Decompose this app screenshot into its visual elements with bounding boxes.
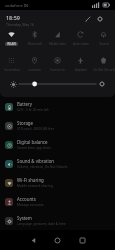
button[interactable]: Auto rotate <box>69 31 92 49</box>
staticText: Screenshot <box>4 68 20 72</box>
staticText: Do Not Disturb <box>93 68 115 72</box>
button[interactable]: Sound & vibration <box>0 154 115 173</box>
staticText: Thursday, May 16 <box>6 22 34 27</box>
button[interactable]: Wi-Fi sharing <box>0 173 115 192</box>
button[interactable]: Do Not Disturb <box>92 57 115 75</box>
staticText: Battery <box>17 101 33 107</box>
button[interactable]: Edit <box>82 13 94 25</box>
button[interactable]: Sound <box>92 31 115 49</box>
staticText: WLAN <box>7 42 16 46</box>
staticText: Digital balance <box>17 139 48 145</box>
button[interactable]: Mobile data <box>46 31 69 49</box>
button[interactable]: Battery <box>0 97 115 116</box>
staticText: Accounts <box>17 196 36 202</box>
button[interactable]: Airplane <box>69 57 92 75</box>
staticText: Wi-Fi sharing <box>17 177 44 183</box>
button[interactable]: System <box>0 211 115 230</box>
staticText: vodafone IN <box>5 3 29 8</box>
staticText: Volume, vibration, Do Not Disturb <box>17 165 68 169</box>
staticText: 31% used - 88.00 GB free <box>17 127 55 131</box>
staticText: Manage accounts <box>17 203 44 207</box>
staticText: Language, gestures, date & time <box>17 222 66 226</box>
button[interactable]: Screen rec. <box>46 57 69 75</box>
staticText: Auto rotate <box>73 42 89 46</box>
button[interactable]: Location <box>23 57 46 75</box>
staticText: Screen time, app limits <box>17 146 52 150</box>
button[interactable]: Auto brightness <box>6 77 20 91</box>
button[interactable]: Accounts <box>0 192 115 211</box>
button[interactable]: Display settings <box>95 77 109 91</box>
button[interactable]: Digital balance <box>0 135 115 154</box>
staticText: Storage <box>17 120 34 126</box>
staticText: Airplane <box>75 68 87 72</box>
button[interactable]: Storage <box>0 116 115 135</box>
staticText: Mobile data <box>49 42 66 46</box>
staticText: Location <box>28 68 41 72</box>
button[interactable]: Recents <box>72 230 92 250</box>
button[interactable]: WLAN <box>0 31 23 49</box>
button[interactable]: Bluetooth <box>23 31 46 49</box>
button[interactable]: Home <box>47 230 67 250</box>
staticText: 62% - 5 hr 20 min left <box>17 108 49 112</box>
staticText: System <box>17 215 32 221</box>
staticText: Sound <box>99 42 109 46</box>
staticText: 18:59 <box>6 14 20 21</box>
button[interactable]: Screenshot <box>0 57 23 75</box>
staticText: Screen rec. <box>50 68 66 72</box>
staticText: Sound & vibration <box>17 158 55 164</box>
button[interactable]: Settings <box>94 13 106 25</box>
button[interactable]: Back <box>23 230 43 250</box>
staticText: Mobile network sharing <box>17 184 53 188</box>
staticText: Bluetooth <box>28 42 42 46</box>
